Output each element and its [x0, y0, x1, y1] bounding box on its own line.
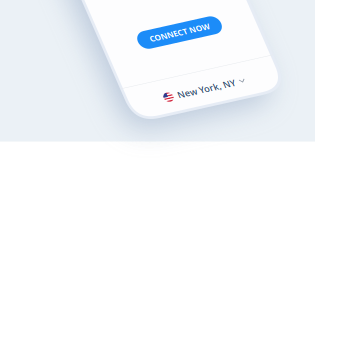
- button[interactable]: Power: [77, 91, 263, 277]
